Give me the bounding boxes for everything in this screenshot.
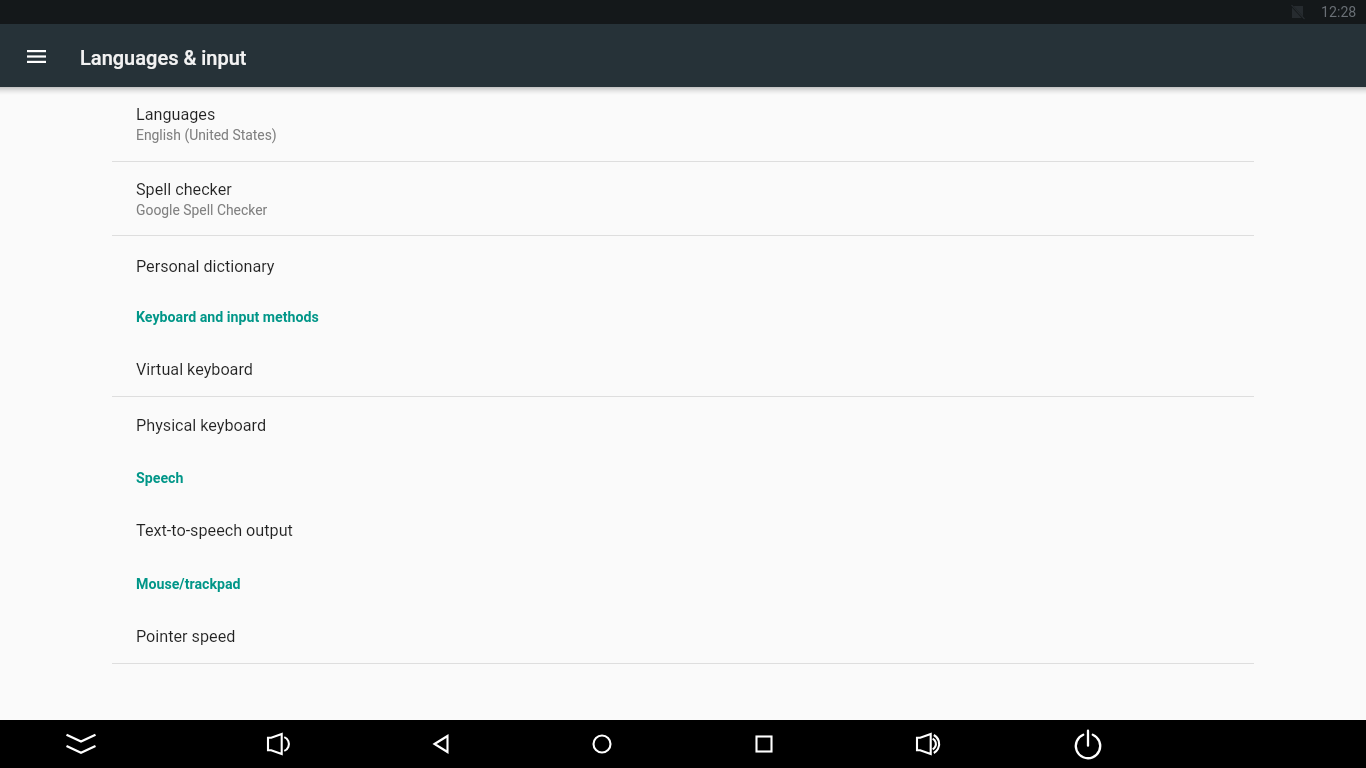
button[interactable]: Text-to-speech output	[112, 505, 1254, 560]
staticText: Pointer speed	[136, 627, 236, 646]
button[interactable]: Back	[415, 720, 467, 768]
staticText: Physical keyboard	[136, 416, 267, 435]
button[interactable]: Recent apps	[738, 720, 790, 768]
button[interactable]: Languages	[112, 88, 1254, 161]
button[interactable]: Open navigation menu	[12, 32, 60, 80]
staticText: Languages	[136, 105, 216, 124]
staticText: Languages & input	[80, 46, 247, 69]
staticText: Personal dictionary	[136, 257, 275, 276]
button[interactable]: Hide keyboard	[55, 720, 107, 768]
button[interactable]: Physical keyboard	[112, 397, 1254, 456]
button[interactable]: Volume up	[900, 720, 952, 768]
staticText: 12:28	[1321, 4, 1357, 21]
staticText: Text-to-speech output	[136, 521, 293, 540]
staticText: Mouse/trackpad	[136, 576, 241, 593]
button[interactable]: Volume down	[251, 720, 303, 768]
button[interactable]: Personal dictionary	[112, 236, 1254, 296]
staticText: Google Spell Checker	[136, 202, 268, 218]
button[interactable]: Home	[576, 720, 628, 768]
button[interactable]: Pointer speed	[112, 610, 1254, 663]
staticText: Speech	[136, 470, 184, 487]
staticText: Virtual keyboard	[136, 360, 253, 379]
staticText: English (United States)	[136, 127, 277, 143]
button[interactable]: Spell checker	[112, 162, 1254, 235]
staticText: Spell checker	[136, 180, 232, 199]
button[interactable]: Virtual keyboard	[112, 345, 1254, 396]
staticText: Keyboard and input methods	[136, 309, 319, 326]
button[interactable]: Power	[1062, 720, 1114, 768]
